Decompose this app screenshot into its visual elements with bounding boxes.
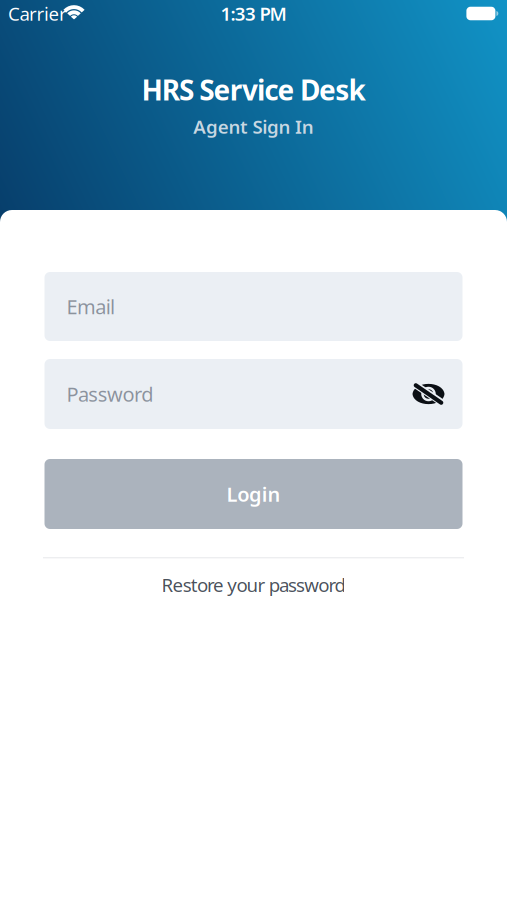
staticText: HRS Service Desk — [141, 71, 365, 108]
button[interactable]: Password — [44, 359, 462, 429]
staticText: Login — [227, 481, 280, 507]
staticText: Agent Sign In — [193, 114, 314, 139]
staticText: Email — [66, 293, 115, 320]
staticText: Password — [66, 381, 153, 407]
staticText: Carrier — [8, 1, 67, 26]
staticText: Restore your password — [161, 572, 345, 597]
button[interactable]: Email — [44, 272, 462, 341]
button[interactable]: Login — [44, 459, 462, 529]
button[interactable]: Show password — [411, 381, 445, 407]
button[interactable]: Restore your password — [161, 572, 345, 597]
staticText: 1:33 PM — [220, 1, 287, 26]
